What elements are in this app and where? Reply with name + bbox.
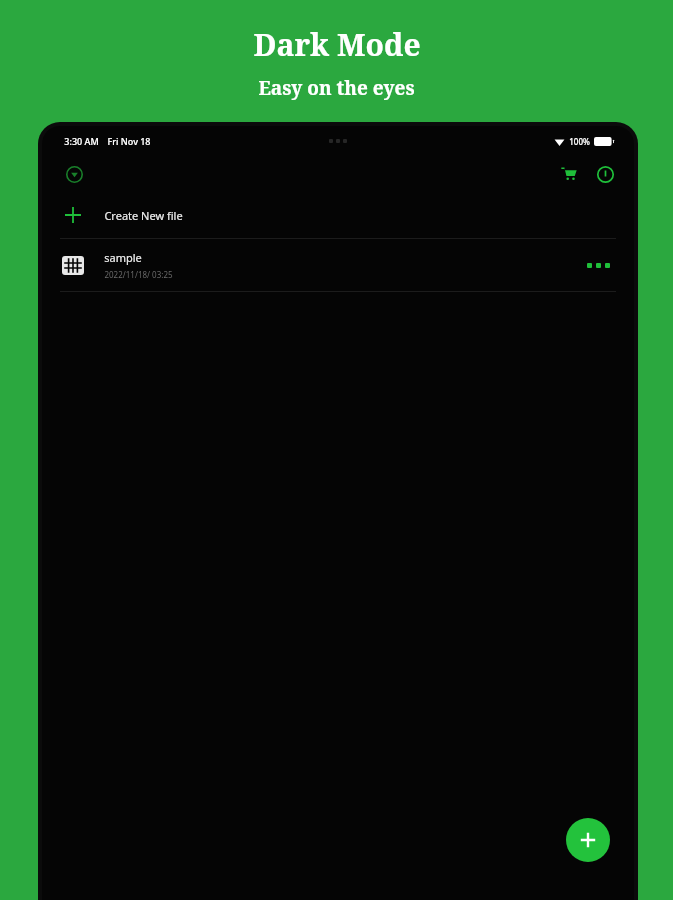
button[interactable]: More options	[578, 245, 618, 285]
button[interactable]: Create New file	[42, 192, 634, 238]
staticText: Easy on the eyes	[258, 75, 415, 101]
button[interactable]: Add	[566, 818, 610, 862]
staticText: Dark Mode	[253, 24, 421, 65]
button[interactable]: Downloads	[60, 160, 88, 188]
button[interactable]: Info	[590, 159, 620, 189]
button[interactable]: sample	[42, 239, 634, 291]
staticText: 2022/11/18/ 03:25	[104, 269, 173, 280]
staticText: Fri Nov 18	[107, 135, 151, 147]
button[interactable]: Store	[554, 159, 584, 189]
staticText: Create New file	[104, 208, 183, 223]
staticText: 100%	[569, 136, 590, 147]
staticText: sample	[104, 250, 142, 265]
staticText: 3:30 AM	[64, 135, 99, 147]
